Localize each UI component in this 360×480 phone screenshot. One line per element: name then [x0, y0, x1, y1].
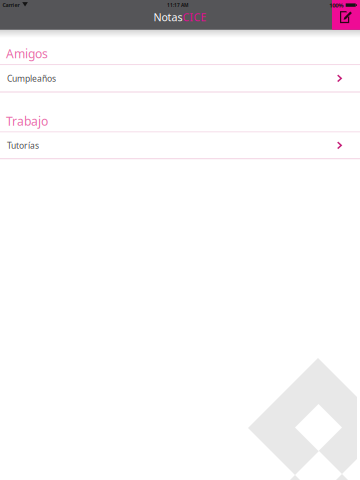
- staticText: Cumpleaños: [7, 72, 56, 84]
- staticText: 11:17 AM: [167, 2, 189, 8]
- button[interactable]: Cumpleaños: [0, 65, 360, 92]
- button[interactable]: Tutorías: [0, 132, 360, 159]
- staticText: 100%: [329, 1, 343, 9]
- button[interactable]: Compose note: [332, 0, 360, 30]
- staticText: Trabajo: [6, 113, 48, 129]
- staticText: Amigos: [6, 45, 48, 62]
- staticText: CICE: [182, 10, 206, 24]
- staticText: Notas: [153, 10, 182, 24]
- staticText: Tutorías: [7, 139, 39, 151]
- staticText: Carrier: [3, 2, 20, 9]
